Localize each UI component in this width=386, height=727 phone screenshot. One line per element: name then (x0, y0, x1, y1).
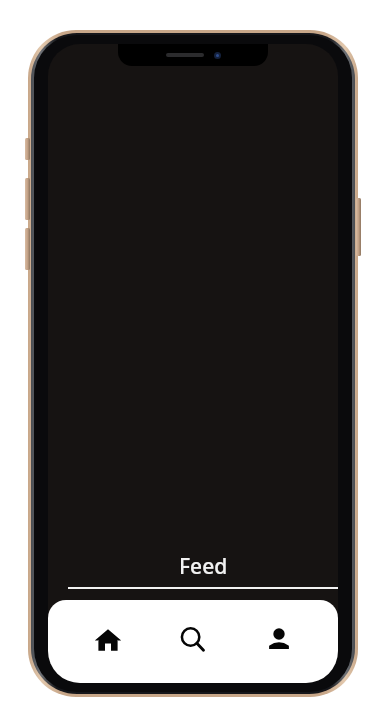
button[interactable]: Home (82, 614, 134, 666)
button[interactable]: Create Post (66, 611, 320, 645)
staticText: Feed (179, 552, 228, 581)
button[interactable]: Open post (66, 657, 320, 683)
button[interactable]: Search (167, 614, 219, 666)
button[interactable]: Feed (68, 552, 338, 589)
button[interactable]: Profile (253, 614, 305, 666)
staticText: Create Post (104, 622, 153, 634)
